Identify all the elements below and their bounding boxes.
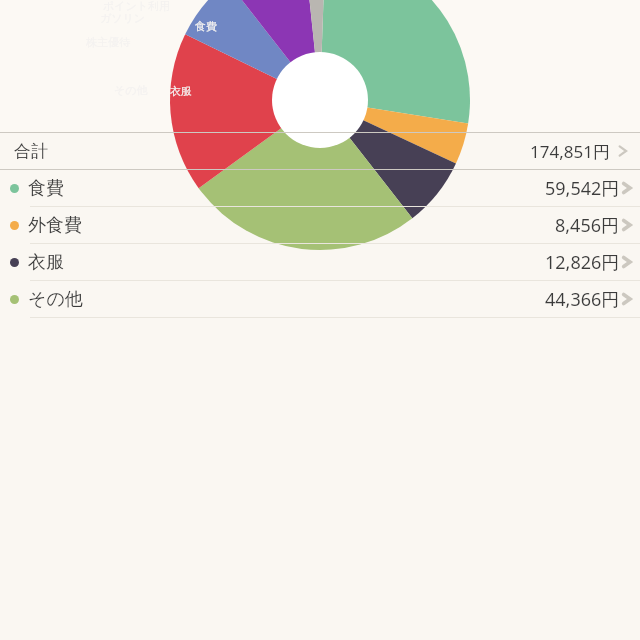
staticText: 食費 [28,177,64,200]
other: 詳細を表示 [620,176,634,200]
staticText: 12,826円 [545,250,620,275]
staticText: 衣服 [28,251,64,274]
staticText: 食費 [195,19,217,33]
staticText: 衣服 [170,84,192,98]
button[interactable]: 外食費 [0,207,640,243]
other: 詳細を表示 [616,139,630,163]
staticText: 44,366円 [545,287,620,312]
staticText: 合計 [14,141,48,162]
staticText: 59,542円 [545,176,620,201]
other: 詳細を表示 [620,250,634,274]
staticText: 外食費 [28,214,82,237]
staticText: その他 [28,288,83,311]
button[interactable]: 食費 [0,170,640,206]
staticText: 174,851円 [530,140,610,163]
other: 詳細を表示 [620,287,634,311]
staticText: 8,456円 [555,213,620,238]
other: 詳細を表示 [620,213,634,237]
button[interactable]: 合計 [0,133,640,169]
button[interactable]: その他 [0,281,640,317]
button[interactable]: 衣服 [0,244,640,280]
